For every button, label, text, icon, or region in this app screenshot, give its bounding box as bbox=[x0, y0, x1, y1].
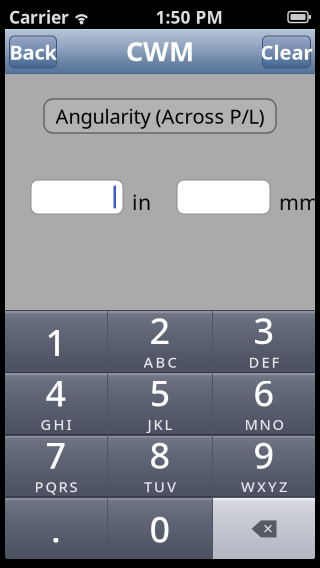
staticText: in bbox=[132, 188, 151, 216]
staticText: T U V bbox=[144, 477, 176, 496]
staticText: 6 bbox=[253, 369, 274, 416]
staticText: 8 bbox=[149, 431, 170, 479]
staticText: 0 bbox=[149, 505, 170, 553]
button[interactable]: Delete bbox=[213, 497, 315, 559]
button[interactable]: 5 bbox=[108, 372, 212, 434]
staticText: CWM bbox=[126, 33, 194, 69]
staticText: 2 bbox=[149, 306, 170, 354]
staticText: . bbox=[51, 505, 61, 553]
button[interactable]: 3 bbox=[213, 310, 315, 372]
staticText: Carrier bbox=[9, 5, 69, 28]
button[interactable]: 4 bbox=[5, 372, 107, 434]
staticText: 4 bbox=[45, 369, 66, 416]
button[interactable]: . bbox=[5, 497, 107, 559]
staticText: Clear bbox=[260, 39, 312, 65]
staticText: A B C bbox=[143, 352, 176, 372]
button[interactable]: 6 bbox=[213, 372, 315, 434]
staticText: ✕ bbox=[262, 521, 273, 536]
button[interactable]: 0 bbox=[108, 497, 212, 559]
button[interactable] bbox=[177, 180, 270, 214]
staticText: G H I bbox=[40, 414, 71, 434]
staticText: 3 bbox=[253, 306, 274, 354]
staticText: 1 bbox=[45, 318, 66, 366]
staticText: 9 bbox=[253, 431, 274, 479]
button[interactable]: 2 bbox=[108, 310, 212, 372]
staticText: P Q R S bbox=[34, 477, 77, 496]
button[interactable]: Clear bbox=[262, 35, 310, 67]
button[interactable]: 1 bbox=[5, 310, 107, 372]
staticText: M N O bbox=[244, 414, 283, 434]
staticText: Angularity (Across P/L) bbox=[55, 103, 264, 129]
staticText: W X Y Z bbox=[241, 477, 287, 496]
button[interactable] bbox=[31, 180, 123, 214]
staticText: 7 bbox=[45, 431, 66, 479]
staticText: Back bbox=[9, 39, 56, 65]
button[interactable]: 7 bbox=[5, 434, 107, 497]
staticText: 1:50 PM bbox=[155, 5, 222, 28]
staticText: 5 bbox=[149, 369, 170, 416]
button[interactable]: 8 bbox=[108, 434, 212, 497]
button[interactable]: Back bbox=[9, 35, 56, 67]
staticText: J K L bbox=[147, 414, 172, 434]
staticText: D E F bbox=[248, 352, 279, 372]
staticText: mm bbox=[279, 188, 319, 216]
button[interactable]: 9 bbox=[213, 434, 315, 497]
button[interactable]: Angularity (Across P/L) bbox=[44, 99, 276, 133]
